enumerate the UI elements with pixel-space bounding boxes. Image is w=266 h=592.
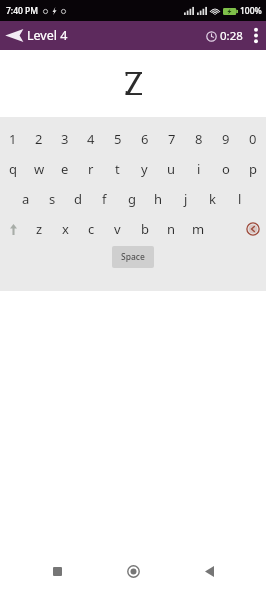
button[interactable]: d [65,189,91,209]
staticText: o [222,160,230,178]
button[interactable]: 1 [0,129,26,149]
button[interactable]: Space [112,246,154,268]
button[interactable]: Back [0,25,74,46]
button[interactable]: z [26,219,52,239]
staticText: e [61,160,69,178]
button[interactable]: More options [248,23,264,48]
button[interactable]: 2 [26,129,52,149]
staticText: 1 [9,130,17,148]
button[interactable]: t [104,159,131,179]
button[interactable]: 6 [131,129,158,149]
button[interactable]: a [13,189,39,209]
button[interactable]: Home [116,554,150,588]
staticText: x [62,220,69,238]
staticText: v [114,220,121,238]
staticText: u [167,160,176,178]
button[interactable]: n [158,219,185,239]
staticText: 100% [240,5,262,17]
staticText: z [36,220,43,238]
staticText: 4 [87,130,95,148]
staticText: a [22,190,30,208]
staticText: h [154,190,163,208]
staticText: 8 [195,130,203,148]
staticText: p [249,160,257,178]
button[interactable]: Shift [0,219,26,239]
button[interactable]: k [199,189,226,209]
staticText: 6 [141,130,149,148]
staticText: s [49,190,56,208]
button[interactable]: u [158,159,185,179]
button[interactable]: j [172,189,199,209]
button[interactable]: 8 [185,129,212,149]
button[interactable]: x [52,219,78,239]
button[interactable]: r [78,159,104,179]
button[interactable]: y [131,159,158,179]
button[interactable]: q [0,159,26,179]
staticText: y [141,160,148,178]
button[interactable]: c [78,219,104,239]
button[interactable]: 7 [158,129,185,149]
staticText: 9 [222,130,230,148]
button[interactable]: 3 [52,129,78,149]
button[interactable]: Backspace [239,219,266,239]
button[interactable]: e [52,159,78,179]
staticText: k [209,190,216,208]
staticText: c [88,220,95,238]
button[interactable]: i [185,159,212,179]
button[interactable]: g [118,189,145,209]
staticText: q [9,160,17,178]
button[interactable]: 9 [212,129,239,149]
staticText: 3 [61,130,69,148]
other: Back [4,28,24,43]
staticText: Space [121,251,145,263]
staticText: w [34,160,45,178]
staticText: b [141,220,149,238]
button[interactable]: w [26,159,52,179]
button[interactable]: 5 [104,129,131,149]
staticText: 0 [249,130,257,148]
staticText: r [88,160,94,178]
button[interactable]: f [91,189,118,209]
other: Timer [206,31,217,42]
staticText: 7:40 PM [6,5,39,17]
button[interactable]: 0 [239,129,266,149]
staticText: l [238,190,242,208]
button[interactable]: v [104,219,131,239]
staticText: 7 [168,130,176,148]
button[interactable]: o [212,159,239,179]
button[interactable]: 4 [78,129,104,149]
staticText: i [197,160,201,178]
staticText: 5 [114,130,122,148]
staticText: 2 [35,130,43,148]
staticText: j [184,190,188,208]
button[interactable]: l [226,189,253,209]
button[interactable]: h [145,189,172,209]
button[interactable]: s [39,189,65,209]
button[interactable]: Timer [203,26,246,46]
button[interactable]: Back [192,554,226,588]
staticText: m [192,220,205,238]
button[interactable]: b [131,219,158,239]
staticText: g [128,190,136,208]
staticText: 0:28 [220,28,243,44]
button[interactable]: m [185,219,212,239]
staticText: t [115,160,120,178]
button[interactable]: Recent apps [40,554,74,588]
staticText: Level 4 [27,27,68,44]
staticText: d [74,190,82,208]
staticText: f [102,190,107,208]
button[interactable]: p [239,159,266,179]
staticText: n [167,220,176,238]
